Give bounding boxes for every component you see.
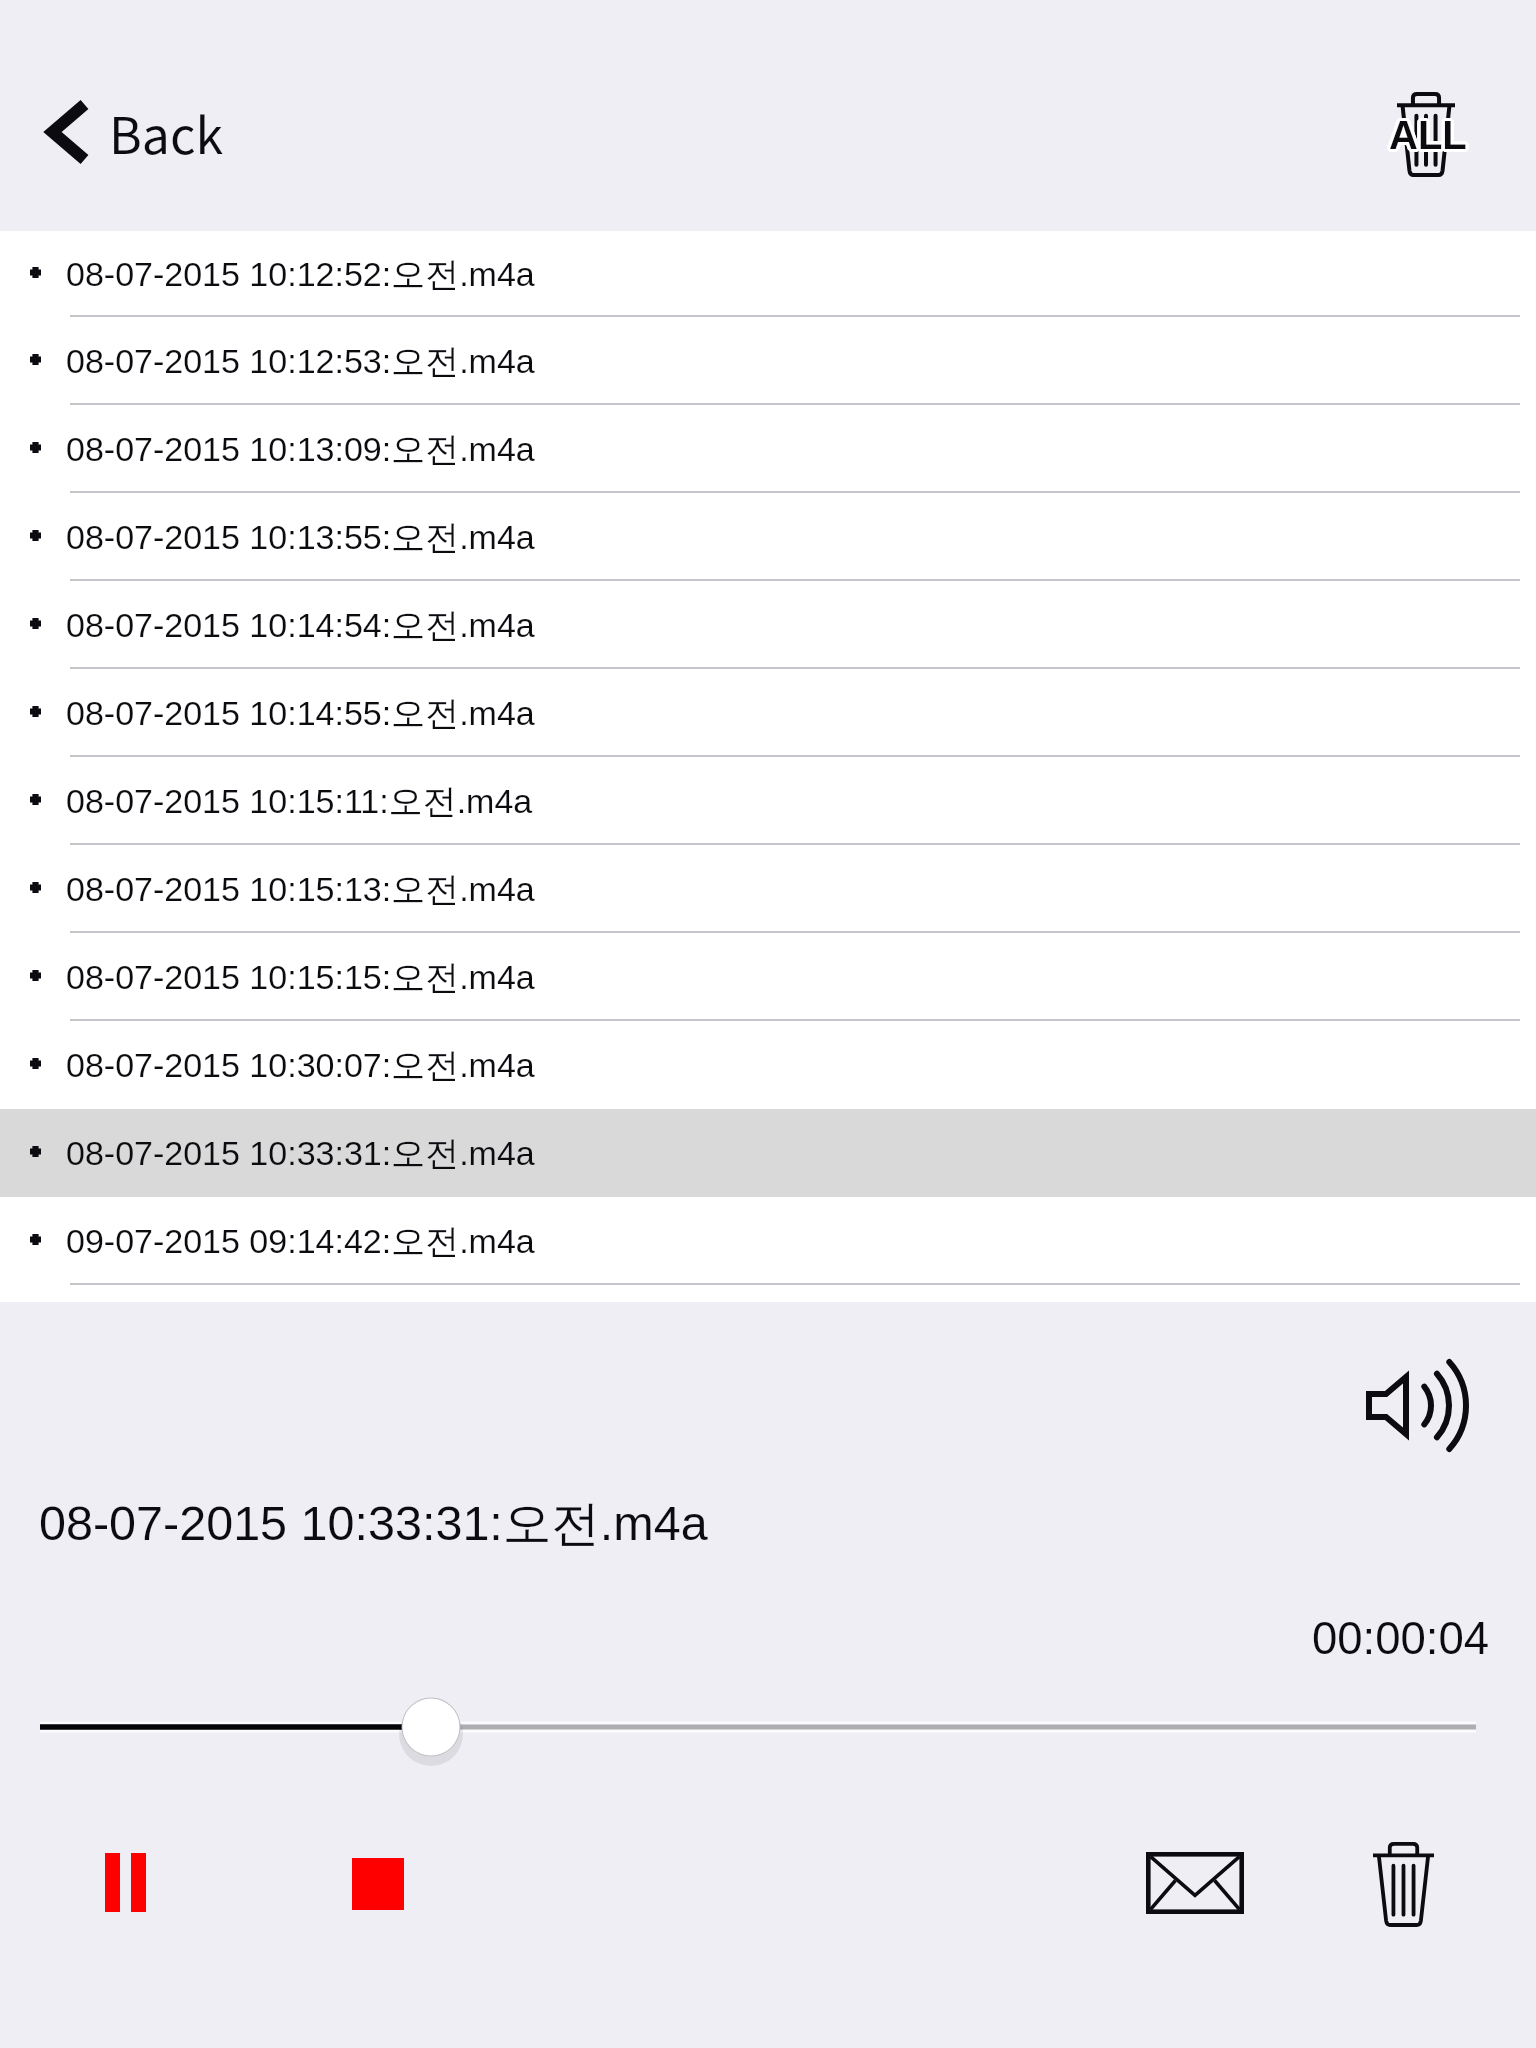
- staticText: ALL: [1387, 113, 1465, 158]
- button[interactable]: Delete recording: [1353, 1835, 1453, 1935]
- staticText: 08-07-2015 10:12:53:오전.m4a: [66, 340, 535, 383]
- staticText: ALL: [1391, 115, 1469, 160]
- staticText: ALL: [1389, 110, 1467, 155]
- staticText: ALL: [1389, 111, 1467, 156]
- staticText: ALL: [1388, 110, 1466, 155]
- staticText: Back: [109, 96, 224, 168]
- button[interactable]: Send by email: [1145, 1833, 1245, 1933]
- staticText: 08-07-2015 10:15:15:오전.m4a: [66, 956, 535, 999]
- staticText: ALL: [1387, 114, 1465, 159]
- staticText: ALL: [1390, 111, 1468, 156]
- staticText: ALL: [1386, 113, 1464, 158]
- button[interactable]: 08-07-2015 10:14:55:오전.m4a: [0, 669, 1536, 757]
- staticText: 08-07-2015 10:33:31:오전.m4a: [39, 1493, 708, 1554]
- staticText: ALL: [1389, 112, 1467, 157]
- button[interactable]: Delete all recordings: [1382, 82, 1474, 178]
- staticText: ALL: [1392, 113, 1470, 158]
- button[interactable]: 08-07-2015 10:12:52:오전.m4a: [0, 231, 1536, 317]
- button[interactable]: 08-07-2015 10:13:55:오전.m4a: [0, 493, 1536, 581]
- staticText: ALL: [1391, 111, 1469, 156]
- staticText: ALL: [1387, 115, 1465, 160]
- staticText: ALL: [1388, 112, 1466, 157]
- button[interactable]: 08-07-2015 10:33:31:오전.m4a: [0, 1109, 1536, 1197]
- button[interactable]: 08-07-2015 10:13:09:오전.m4a: [0, 405, 1536, 493]
- staticText: ALL: [1388, 113, 1466, 158]
- staticText: ALL: [1390, 115, 1468, 160]
- button[interactable]: 08-07-2015 10:15:13:오전.m4a: [0, 845, 1536, 933]
- staticText: ALL: [1386, 112, 1464, 157]
- staticText: 08-07-2015 10:14:54:오전.m4a: [66, 604, 535, 647]
- staticText: 08-07-2015 10:12:52:오전.m4a: [66, 253, 535, 296]
- staticText: 08-07-2015 10:14:55:오전.m4a: [66, 692, 535, 735]
- staticText: ALL: [1387, 112, 1465, 157]
- staticText: ALL: [1387, 111, 1465, 156]
- button[interactable]: 09-07-2015 09:14:42:오전.m4a: [0, 1197, 1536, 1285]
- staticText: 09-07-2015 09:14:42:오전.m4a: [66, 1220, 535, 1263]
- staticText: 08-07-2015 10:15:13:오전.m4a: [66, 868, 535, 911]
- staticText: 08-07-2015 10:33:31:오전.m4a: [66, 1132, 535, 1175]
- button[interactable]: Stop: [328, 1834, 428, 1934]
- button[interactable]: Volume: [1347, 1348, 1487, 1478]
- button[interactable]: Pause: [75, 1832, 175, 1932]
- staticText: ALL: [1391, 112, 1469, 157]
- staticText: 08-07-2015 10:13:55:오전.m4a: [66, 516, 535, 559]
- staticText: ALL: [1389, 113, 1467, 158]
- staticText: ALL: [1392, 114, 1470, 159]
- staticText: ALL: [1390, 114, 1468, 159]
- staticText: ALL: [1386, 114, 1464, 159]
- staticText: ALL: [1388, 111, 1466, 156]
- staticText: 08-07-2015 10:30:07:오전.m4a: [66, 1044, 535, 1087]
- button[interactable]: Back: [20, 77, 250, 187]
- staticText: 08-07-2015 10:15:11:오전.m4a: [66, 780, 533, 823]
- button[interactable]: 08-07-2015 10:30:07:오전.m4a: [0, 1021, 1536, 1109]
- button[interactable]: 08-07-2015 10:15:15:오전.m4a: [0, 933, 1536, 1021]
- staticText: ALL: [1391, 114, 1469, 159]
- staticText: 00:00:04: [1312, 1613, 1490, 1664]
- staticText: 08-07-2015 10:13:09:오전.m4a: [66, 428, 535, 471]
- staticText: ALL: [1390, 113, 1468, 158]
- button[interactable]: 08-07-2015 10:12:53:오전.m4a: [0, 317, 1536, 405]
- staticText: ALL: [1388, 114, 1466, 159]
- staticText: ALL: [1389, 116, 1467, 161]
- staticText: ALL: [1390, 112, 1468, 157]
- staticText: ALL: [1390, 116, 1468, 161]
- staticText: ALL: [1388, 115, 1466, 160]
- button[interactable]: 08-07-2015 10:14:54:오전.m4a: [0, 581, 1536, 669]
- staticText: ALL: [1388, 116, 1466, 161]
- button[interactable]: 08-07-2015 10:15:11:오전.m4a: [0, 757, 1536, 845]
- staticText: ALL: [1391, 113, 1469, 158]
- staticText: ALL: [1392, 112, 1470, 157]
- staticText: ALL: [1389, 115, 1467, 160]
- staticText: ALL: [1390, 110, 1468, 155]
- staticText: ALL: [1389, 114, 1467, 159]
